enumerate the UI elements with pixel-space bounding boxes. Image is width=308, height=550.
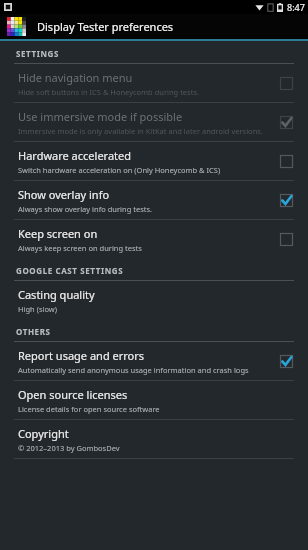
button[interactable]: Open source licenses xyxy=(0,381,308,419)
button[interactable]: Checked xyxy=(278,192,294,208)
staticText: GOOGLE CAST SETTINGS xyxy=(16,265,124,276)
button[interactable]: Report usage and errors xyxy=(0,342,308,380)
staticText: Open source licenses xyxy=(18,387,128,402)
staticText: SETTINGS xyxy=(16,48,59,59)
button[interactable]: Hide navigation menu xyxy=(0,64,308,102)
staticText: Always show overlay info during tests. xyxy=(18,204,153,214)
staticText: Copyright xyxy=(18,426,69,441)
staticText: Hide navigation menu xyxy=(18,70,133,85)
staticText: 8:47 xyxy=(287,1,305,13)
staticText: Switch hardware acceleration on (Only Ho… xyxy=(18,165,221,175)
button[interactable]: Checked xyxy=(278,114,294,130)
staticText: Show overlay info xyxy=(18,187,110,202)
staticText: High (slow) xyxy=(18,304,57,314)
staticText: © 2012–2013 by GombosDev xyxy=(18,443,120,453)
staticText: Casting quality xyxy=(18,287,95,302)
staticText: License details for open source software xyxy=(18,404,160,414)
button[interactable]: Use immersive mode if possible xyxy=(0,103,308,141)
button[interactable]: Display Tester preferences xyxy=(0,14,308,39)
button[interactable]: Unchecked xyxy=(278,75,294,91)
staticText: Report usage and errors xyxy=(18,348,145,363)
staticText: Keep screen on xyxy=(18,226,98,241)
staticText: Immersive mode is only available in KitK… xyxy=(18,126,263,136)
staticText: Hardware accelerated xyxy=(18,148,132,163)
staticText: Use immersive mode if possible xyxy=(18,109,183,124)
staticText: Always keep screen on during tests xyxy=(18,243,142,253)
button[interactable]: Copyright xyxy=(0,420,308,458)
button[interactable]: Hardware accelerated xyxy=(0,142,308,180)
staticText: Display Tester preferences xyxy=(37,19,174,34)
staticText: OTHERS xyxy=(16,326,51,337)
button[interactable]: Checked xyxy=(278,353,294,369)
button[interactable]: Keep screen on xyxy=(0,220,308,258)
button[interactable]: Unchecked xyxy=(278,153,294,169)
button[interactable]: Casting quality xyxy=(0,281,308,319)
button[interactable]: Show overlay info xyxy=(0,181,308,219)
staticText: Hide soft buttons in ICS & Honeycomb dur… xyxy=(18,87,200,97)
button[interactable]: Unchecked xyxy=(278,231,294,247)
staticText: Automatically send anonymous usage infor… xyxy=(18,365,249,375)
